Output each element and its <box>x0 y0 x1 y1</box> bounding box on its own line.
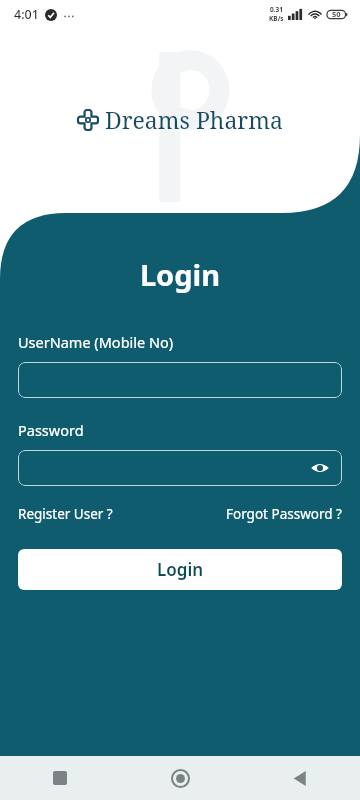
button[interactable]: Back <box>240 756 360 800</box>
staticText: UserName (Mobile No) <box>18 332 174 352</box>
button[interactable]: Show password <box>308 456 332 480</box>
staticText: Register User ? <box>18 505 113 523</box>
button[interactable]: Home <box>120 756 240 800</box>
staticText: 0.31 <box>270 5 283 14</box>
button[interactable]: Login <box>18 549 342 590</box>
staticText: 50 <box>332 9 341 19</box>
button[interactable]: Show password <box>18 450 342 486</box>
button[interactable]: Recent apps <box>0 756 120 800</box>
staticText: Login <box>18 255 342 294</box>
staticText: KB/s <box>269 14 284 23</box>
staticText: Login <box>157 558 204 581</box>
button[interactable]: Forgot Password ? <box>226 505 342 523</box>
staticText: Dreams Pharma <box>105 104 283 135</box>
button[interactable] <box>18 362 342 398</box>
staticText: Password <box>18 420 84 440</box>
staticText: 4:01 <box>14 6 39 23</box>
staticText: Forgot Password ? <box>226 505 342 523</box>
button[interactable]: Register User ? <box>18 505 113 523</box>
